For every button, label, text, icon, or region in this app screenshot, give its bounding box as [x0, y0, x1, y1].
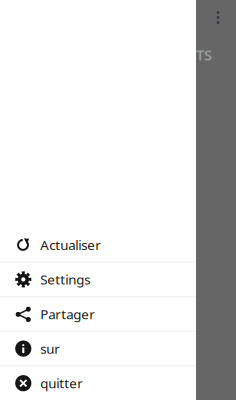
- staticText: TS: [196, 45, 212, 64]
- button[interactable]: More options: [211, 9, 225, 26]
- staticText: Actualiser: [40, 236, 101, 254]
- staticText: Settings: [40, 270, 90, 288]
- button[interactable]: Partager: [0, 297, 196, 331]
- staticText: quitter: [40, 374, 83, 392]
- staticText: sur: [40, 340, 60, 357]
- staticText: Partager: [40, 305, 95, 323]
- button[interactable]: Settings: [0, 263, 196, 296]
- button[interactable]: sur: [0, 332, 196, 365]
- button[interactable]: quitter: [0, 366, 196, 400]
- button[interactable]: Actualiser: [0, 228, 196, 262]
